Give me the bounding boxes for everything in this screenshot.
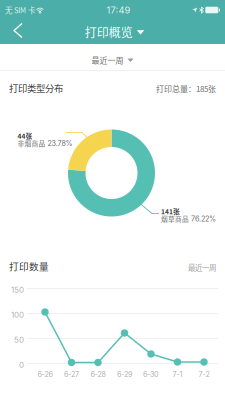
- staticText: 6-29: [117, 370, 132, 379]
- staticText: 打印类型分布: [9, 81, 63, 95]
- staticText: 17:49: [106, 4, 130, 16]
- staticText: 最近一周: [188, 262, 216, 273]
- staticText: 141张: [161, 206, 180, 216]
- button[interactable]: 最近一周: [0, 44, 225, 70]
- staticText: 50: [14, 335, 24, 345]
- staticText: 6-28: [90, 370, 105, 379]
- staticText: 44张: [17, 131, 32, 141]
- staticText: 7-1: [172, 370, 182, 379]
- staticText: 打印数量: [9, 259, 49, 273]
- staticText: 76.22%: [191, 214, 216, 223]
- staticText: 非烟商品: [17, 138, 45, 148]
- staticText: 150: [11, 285, 24, 295]
- staticText: 打印总量：185张: [156, 83, 216, 94]
- staticText: 6-30: [143, 370, 159, 379]
- staticText: 100: [11, 310, 24, 320]
- staticText: 最近一周: [91, 54, 123, 66]
- button[interactable]: 打印概览: [75, 19, 150, 45]
- staticText: 23.78%: [47, 139, 72, 148]
- button[interactable]: 返回: [0, 20, 32, 44]
- staticText: 无 SIM 卡: [5, 5, 35, 15]
- staticText: 6-27: [64, 370, 79, 379]
- staticText: 烟草商品: [161, 214, 189, 224]
- staticText: 7-2: [198, 370, 209, 379]
- staticText: 打印概览: [85, 23, 133, 41]
- staticText: 6-26: [37, 370, 52, 379]
- staticText: 0: [19, 360, 24, 370]
